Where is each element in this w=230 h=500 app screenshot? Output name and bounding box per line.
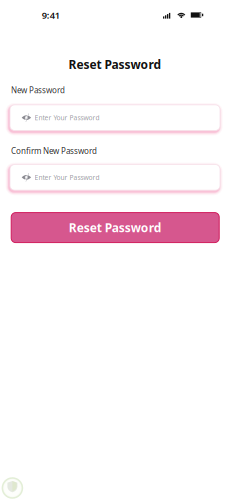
button[interactable]: Enter Your Password — [6, 161, 224, 194]
staticText: New Password — [11, 85, 65, 95]
staticText: Reset Password — [68, 56, 161, 72]
staticText: Reset Password — [69, 220, 162, 235]
button[interactable]: Enter Your Password — [6, 101, 224, 134]
staticText: 9:41 — [42, 9, 60, 21]
button[interactable]: Reset Password — [11, 213, 219, 243]
staticText: Enter Your Password — [35, 113, 100, 122]
staticText: Enter Your Password — [35, 173, 100, 182]
staticText: Confirm New Password — [11, 145, 97, 156]
